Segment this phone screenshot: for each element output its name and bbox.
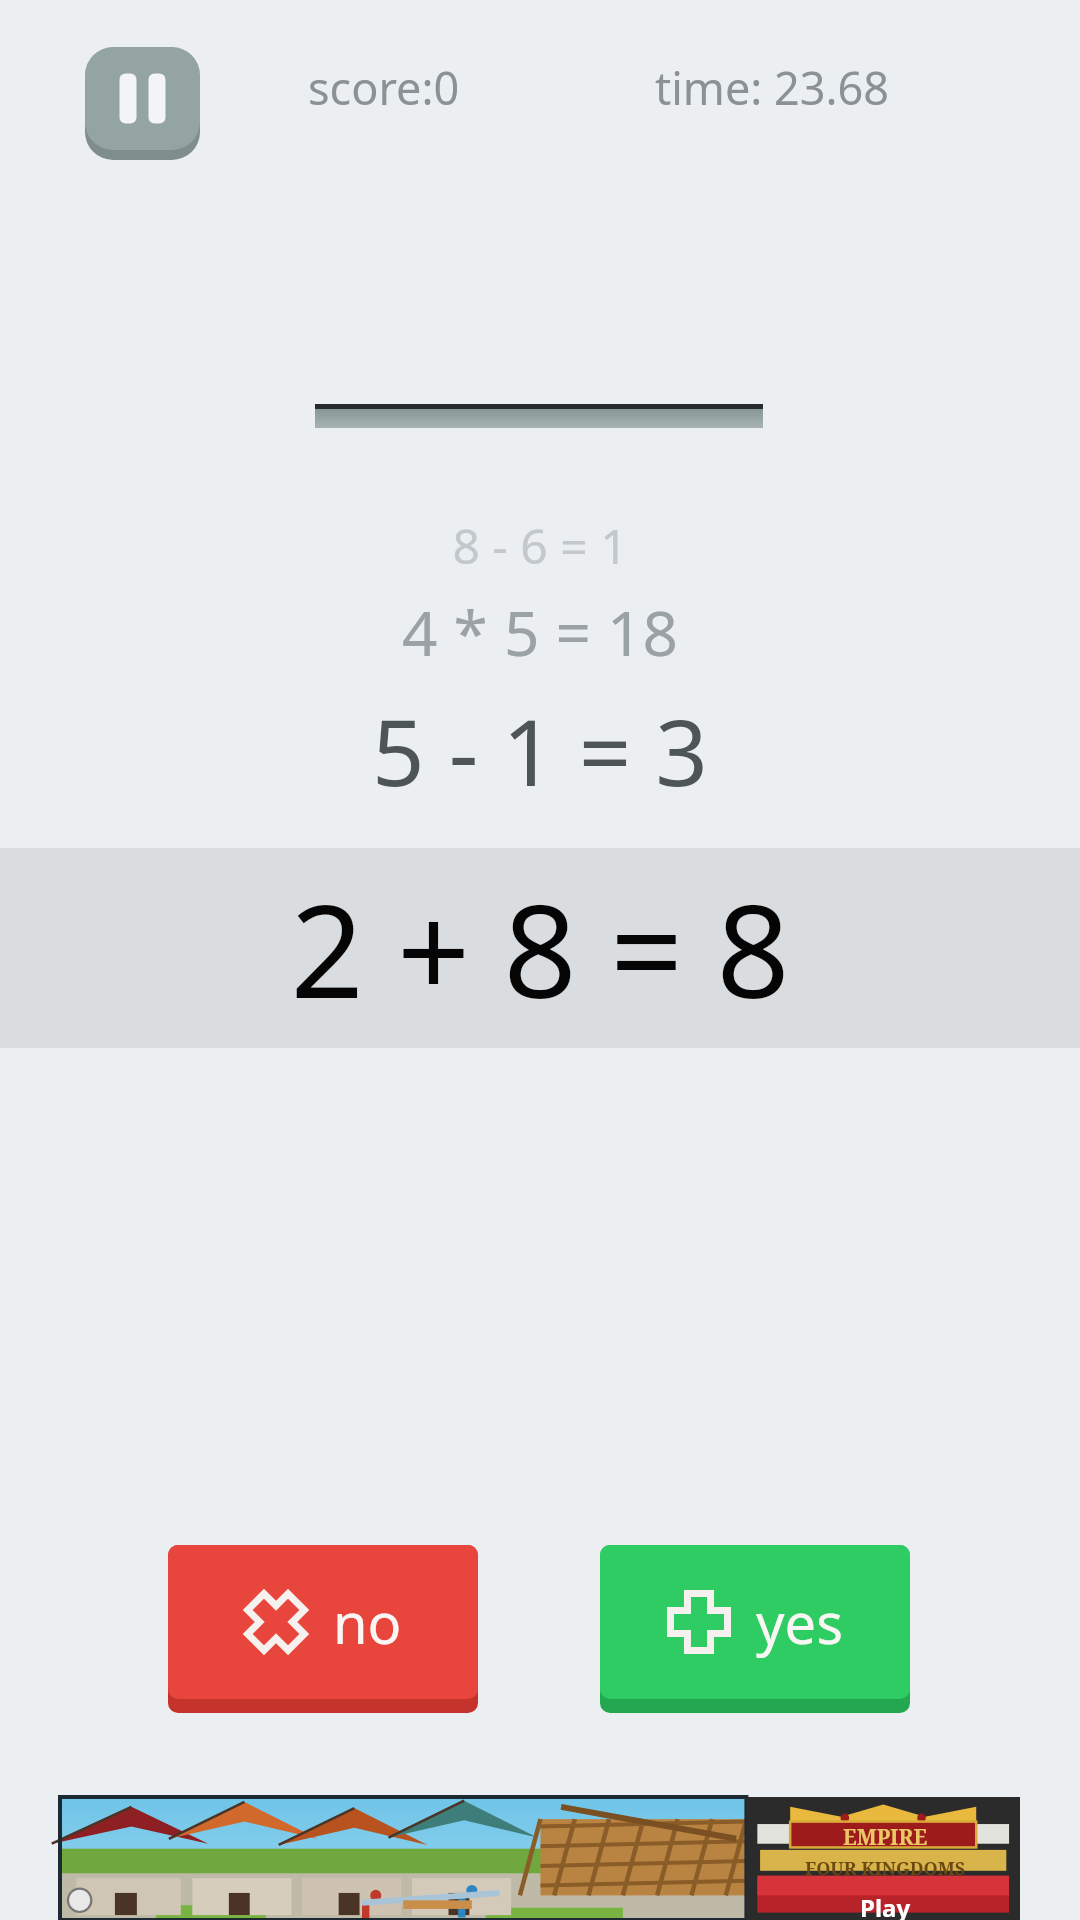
button[interactable]: Pause	[85, 47, 200, 160]
button[interactable]: yes	[600, 1545, 910, 1713]
button[interactable]: 2 + 8 = 8	[0, 848, 1080, 1048]
button[interactable]: no	[168, 1545, 478, 1713]
staticText: time: 23.68	[655, 57, 890, 118]
staticText: FOUR KINGDOMS	[805, 1856, 966, 1881]
staticText: EMPIRE	[843, 1823, 928, 1852]
staticText: Play	[860, 1891, 911, 1920]
staticText: 8 - 6 = 1	[452, 513, 628, 578]
staticText: score:0	[308, 57, 460, 118]
staticText: no	[333, 1584, 402, 1660]
staticText: 4 * 5 = 18	[402, 590, 678, 674]
button[interactable]: EMPIRE	[60, 1797, 1020, 1920]
staticText: 2 + 8 = 8	[290, 861, 790, 1035]
staticText: yes	[756, 1584, 843, 1660]
staticText: 5 - 1 = 3	[372, 688, 708, 813]
